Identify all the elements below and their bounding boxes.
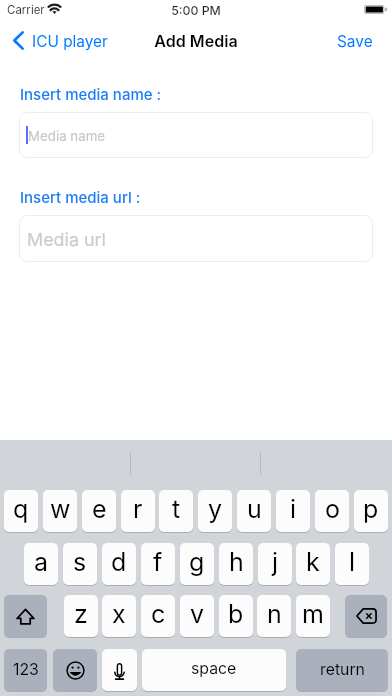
staticText: Insert media name : bbox=[20, 85, 162, 103]
button[interactable]: s bbox=[63, 543, 97, 585]
button[interactable]: v bbox=[180, 595, 214, 637]
button[interactable]: c bbox=[141, 595, 175, 637]
button[interactable]: Media url bbox=[19, 215, 373, 262]
button[interactable]: Dictation bbox=[102, 649, 137, 691]
button[interactable]: y bbox=[198, 490, 232, 532]
staticText: d bbox=[111, 547, 127, 577]
button[interactable]: j bbox=[258, 543, 292, 585]
staticText: h bbox=[229, 547, 244, 577]
staticText: l bbox=[349, 547, 356, 577]
staticText: e bbox=[92, 494, 107, 524]
staticText: c bbox=[151, 599, 166, 629]
button[interactable]: Emoji bbox=[53, 649, 97, 691]
staticText: Insert media url : bbox=[20, 188, 141, 206]
button[interactable]: ICU player bbox=[0, 24, 118, 58]
staticText: m bbox=[302, 599, 324, 629]
staticText: Add Media bbox=[0, 31, 392, 65]
button[interactable]: u bbox=[237, 490, 271, 532]
staticText: Media url bbox=[27, 229, 106, 251]
staticText: s bbox=[73, 547, 87, 577]
button[interactable]: a bbox=[24, 543, 58, 585]
staticText: r bbox=[133, 494, 143, 524]
staticText: z bbox=[74, 599, 88, 629]
staticText: i bbox=[290, 494, 297, 524]
staticText: u bbox=[247, 494, 262, 524]
button[interactable]: i bbox=[276, 490, 310, 532]
staticText: ICU player bbox=[32, 32, 108, 51]
button[interactable]: space bbox=[142, 649, 286, 691]
staticText: w bbox=[50, 494, 71, 524]
button[interactable]: d bbox=[102, 543, 136, 585]
button[interactable]: g bbox=[180, 543, 214, 585]
staticText: space bbox=[191, 659, 237, 678]
button[interactable]: o bbox=[315, 490, 349, 532]
button[interactable]: m bbox=[296, 595, 330, 637]
button[interactable]: h bbox=[219, 543, 253, 585]
button[interactable]: Save bbox=[318, 24, 392, 58]
staticText: k bbox=[306, 547, 320, 577]
staticText: Save bbox=[337, 32, 373, 51]
staticText: a bbox=[34, 547, 49, 577]
button[interactable]: Shift bbox=[4, 595, 47, 637]
staticText: p bbox=[363, 494, 379, 524]
staticText: 5:00 PM bbox=[0, 3, 392, 18]
button[interactable]: b bbox=[219, 595, 253, 637]
button[interactable]: Backspace bbox=[345, 595, 387, 637]
button[interactable]: l bbox=[335, 543, 369, 585]
staticText: b bbox=[228, 599, 244, 629]
staticText: Carrier bbox=[7, 3, 45, 17]
staticText: g bbox=[189, 547, 205, 577]
other: Wi-Fi signal bbox=[47, 4, 62, 14]
staticText: f bbox=[153, 547, 163, 577]
staticText: n bbox=[267, 599, 282, 629]
staticText: t bbox=[172, 494, 181, 524]
button[interactable]: Media name bbox=[19, 112, 373, 158]
staticText: j bbox=[272, 547, 279, 577]
button[interactable]: n bbox=[257, 595, 291, 637]
staticText: Media name bbox=[28, 128, 106, 144]
staticText: return bbox=[320, 660, 365, 679]
button[interactable]: x bbox=[102, 595, 136, 637]
staticText: q bbox=[13, 494, 29, 524]
other: Battery full bbox=[364, 5, 387, 14]
staticText: o bbox=[325, 494, 340, 524]
button[interactable]: z bbox=[64, 595, 98, 637]
button[interactable]: f bbox=[141, 543, 175, 585]
button[interactable]: p bbox=[354, 490, 388, 532]
button[interactable]: k bbox=[296, 543, 330, 585]
button[interactable]: e bbox=[82, 490, 116, 532]
button[interactable]: return bbox=[296, 649, 388, 691]
button[interactable]: r bbox=[121, 490, 155, 532]
staticText: 123 bbox=[13, 660, 39, 679]
staticText: v bbox=[190, 599, 205, 629]
button[interactable]: t bbox=[159, 490, 193, 532]
button[interactable]: q bbox=[4, 490, 38, 532]
staticText: x bbox=[112, 599, 126, 629]
button[interactable]: w bbox=[43, 490, 77, 532]
button[interactable]: 123 bbox=[4, 649, 47, 691]
staticText: y bbox=[208, 494, 223, 524]
